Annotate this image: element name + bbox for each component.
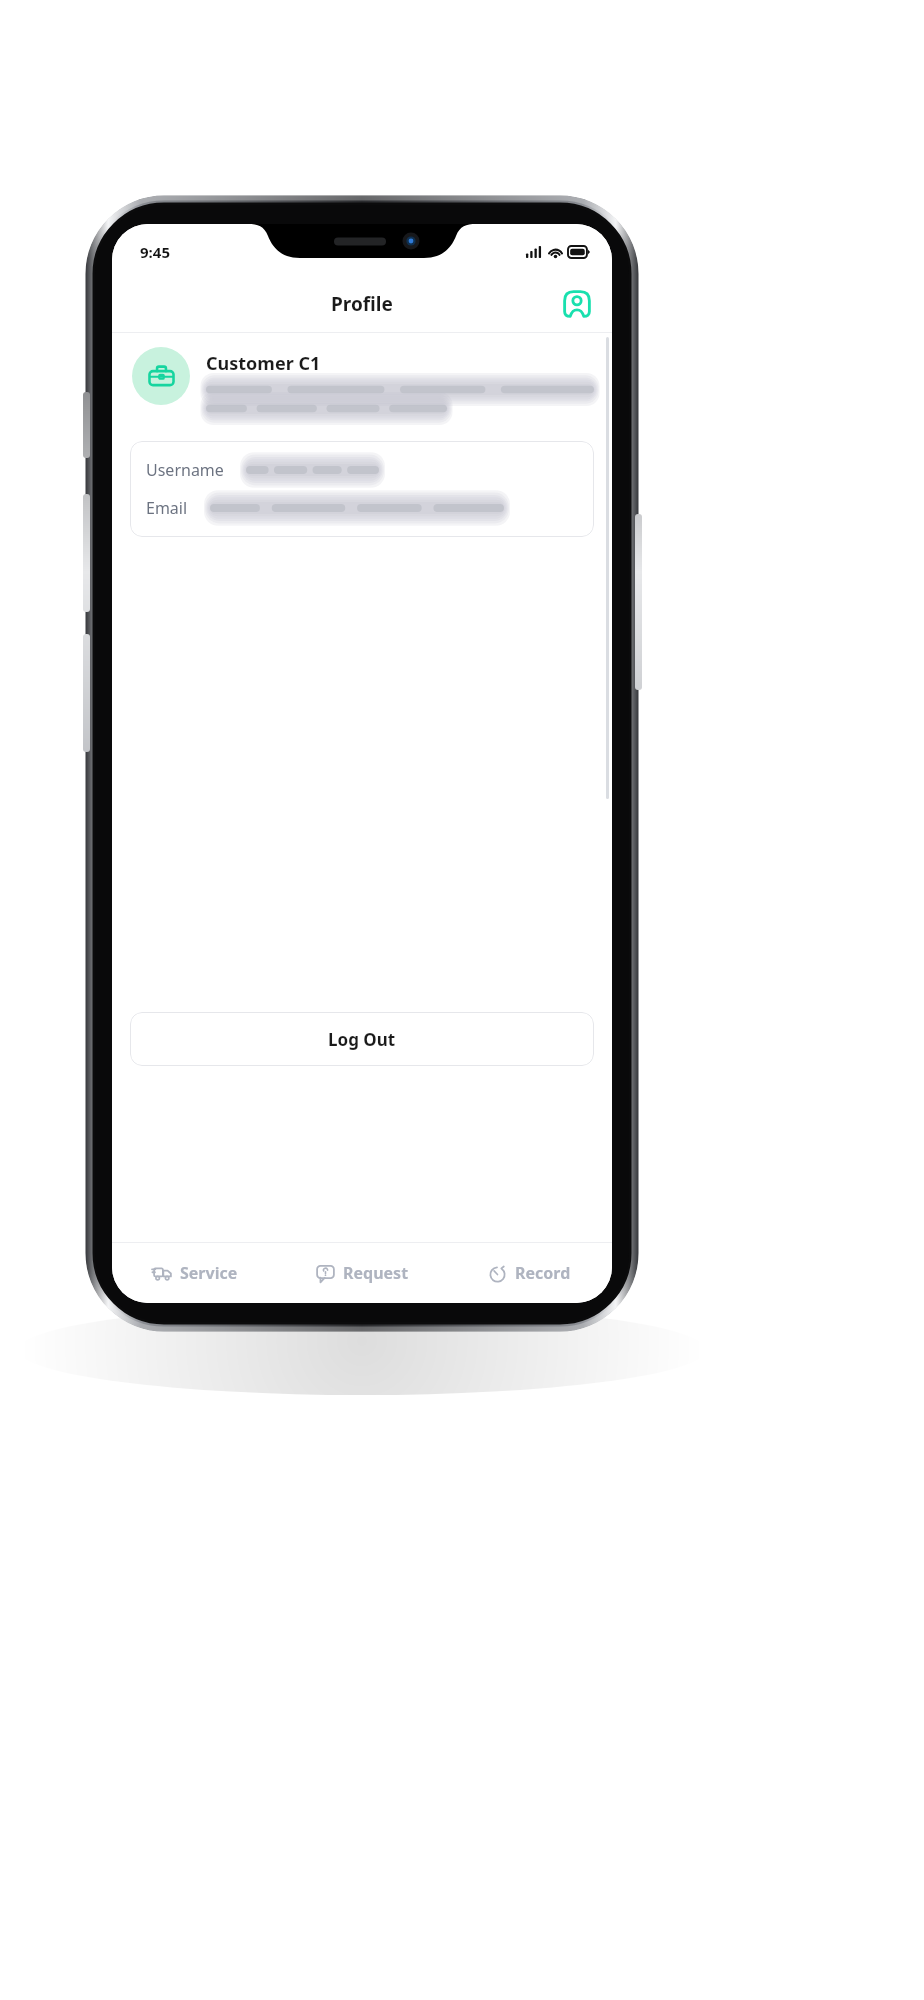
staticText: Profile bbox=[331, 291, 393, 317]
staticText: Customer C1 bbox=[206, 351, 321, 376]
staticText: Service bbox=[180, 1262, 238, 1284]
staticText: Request bbox=[343, 1262, 409, 1284]
button[interactable]: Request bbox=[278, 1243, 445, 1303]
staticText: Log Out bbox=[328, 1028, 396, 1051]
button[interactable]: Customer C1 bbox=[132, 347, 594, 415]
button[interactable]: Record bbox=[445, 1243, 612, 1303]
staticText: Email bbox=[146, 497, 188, 519]
staticText: Username bbox=[146, 459, 224, 481]
staticText: 9:45 bbox=[140, 242, 170, 262]
button[interactable]: Account bbox=[556, 283, 598, 325]
button[interactable]: Username bbox=[130, 441, 594, 537]
staticText: Record bbox=[515, 1262, 571, 1284]
button[interactable]: Log Out bbox=[130, 1012, 594, 1066]
button[interactable]: Service bbox=[112, 1243, 278, 1303]
